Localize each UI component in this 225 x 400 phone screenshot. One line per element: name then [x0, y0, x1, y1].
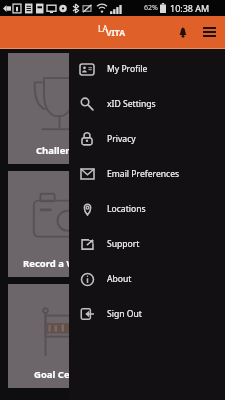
button[interactable]: xID Settings [69, 86, 225, 121]
button[interactable]: Goal Center [8, 284, 116, 388]
staticText: Privacy [107, 133, 136, 145]
button[interactable]: Privacy [69, 121, 225, 156]
button[interactable]: Rewards [123, 284, 225, 388]
staticText: Goal Center [34, 368, 90, 381]
button[interactable]: Email Preferences [69, 156, 225, 191]
staticText: LA [98, 23, 108, 35]
staticText: xID Settings [107, 98, 156, 110]
staticText: My Profile [107, 63, 148, 75]
staticText: Locations [107, 203, 146, 215]
button[interactable]: My Profile [69, 51, 225, 86]
staticText: Sign Out [107, 308, 142, 320]
button[interactable]: Activity [123, 171, 225, 277]
button[interactable]: Notifications [170, 19, 196, 45]
button[interactable]: Record a Weight [8, 171, 116, 277]
staticText: Email Preferences [107, 168, 180, 180]
button[interactable]: Menu [196, 19, 222, 45]
staticText: VITA [106, 27, 126, 39]
button[interactable]: Challenges [8, 53, 116, 164]
button[interactable]: About [69, 261, 225, 296]
staticText: 62% [144, 3, 158, 13]
button[interactable]: Locations [69, 191, 225, 226]
staticText: Record a Weight [23, 257, 101, 270]
button[interactable]: Sign Out [69, 296, 225, 331]
staticText: 10:38 AM [170, 2, 210, 14]
staticText: Support [107, 238, 140, 250]
staticText: Challenges [36, 144, 88, 157]
button[interactable]: Nutrition [123, 53, 225, 164]
staticText: About [107, 273, 132, 285]
button[interactable]: Support [69, 226, 225, 261]
